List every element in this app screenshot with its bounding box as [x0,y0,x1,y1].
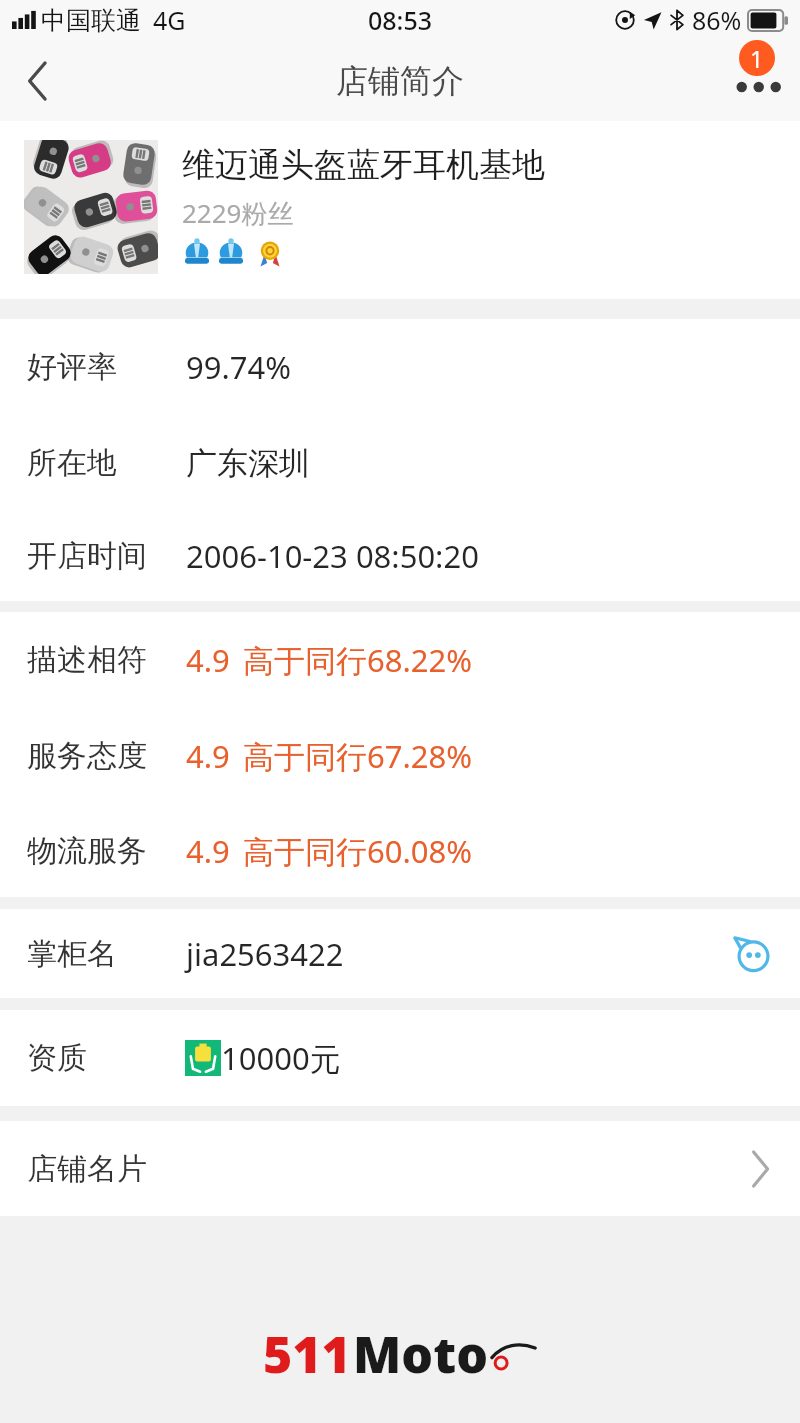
button[interactable]: 维迈通头盔蓝牙耳机基地 [0,121,800,299]
staticText: 99.74% [186,346,291,388]
staticText: 所在地 [27,444,117,482]
staticText: 开店时间 [27,537,147,575]
staticText: Moto [353,1320,489,1388]
button[interactable]: 所在地 [0,415,800,511]
staticText: 维迈通头盔蓝牙耳机基地 [182,144,545,186]
button[interactable]: Back [0,40,76,121]
staticText: 4.9 [186,639,230,681]
button[interactable]: 物流服务 [0,804,800,897]
staticText: 高于同行60.08% [243,830,472,872]
staticText: 中国联通 [41,5,141,36]
staticText: 10000元 [221,1037,341,1079]
staticText: 4.9 [186,735,230,777]
staticText: 86% [692,3,742,37]
staticText: jia2563422 [186,933,344,975]
staticText: 2229粉丝 [182,195,294,231]
staticText: 4.9 [186,830,230,872]
staticText: 店铺简介 [336,61,464,101]
staticText: 掌柜名 [27,935,117,973]
button[interactable]: 店铺名片 [0,1121,800,1216]
staticText: 高于同行68.22% [243,639,472,681]
staticText: 广东深圳 [186,444,310,483]
button[interactable]: 描述相符 [0,612,800,708]
staticText: 4G [153,3,186,37]
button[interactable]: 服务态度 [0,708,800,804]
staticText: 1 [750,43,764,74]
staticText: 2006-10-23 08:50:20 [186,535,479,577]
staticText: 服务态度 [27,737,147,775]
staticText: 511 [263,1320,351,1388]
button[interactable]: More options [714,40,800,121]
staticText: 描述相符 [27,641,147,679]
staticText: 资质 [27,1039,87,1077]
button[interactable]: 开店时间 [0,511,800,601]
staticText: 08:53 [368,3,433,37]
staticText: 店铺名片 [27,1150,147,1188]
button[interactable]: 掌柜名 [0,909,800,998]
button[interactable]: Chat with seller [724,926,780,982]
button[interactable]: 好评率 [0,319,800,415]
staticText: 好评率 [27,348,117,386]
staticText: 物流服务 [27,832,147,870]
staticText: 高于同行67.28% [243,735,472,777]
button[interactable]: 资质 [0,1010,800,1106]
